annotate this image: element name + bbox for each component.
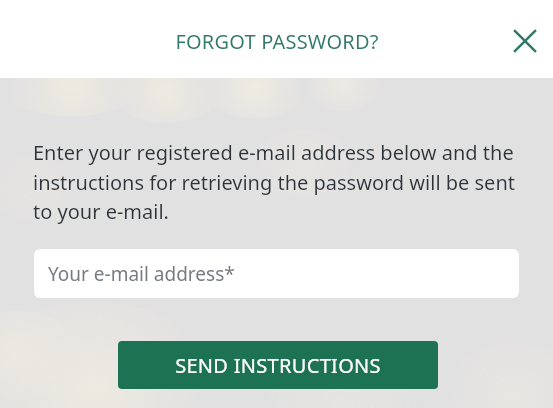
staticText: SEND INSTRUCTIONS [175, 352, 381, 379]
button[interactable]: SEND INSTRUCTIONS [118, 341, 438, 389]
button[interactable]: Your e-mail address* [34, 249, 519, 298]
staticText: Your e-mail address* [48, 261, 235, 287]
staticText: Enter your registered e-mail address bel… [33, 139, 523, 234]
button[interactable]: Close [501, 17, 549, 65]
staticText: FORGOT PASSWORD? [175, 28, 379, 55]
